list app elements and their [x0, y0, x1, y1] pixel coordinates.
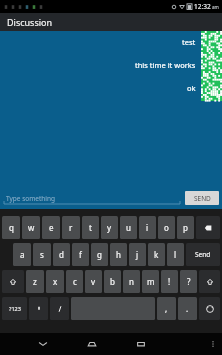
staticText: SEND [194, 194, 211, 203]
staticText: z [33, 276, 37, 287]
button[interactable]: Emoji [199, 297, 220, 320]
button[interactable]: z [26, 270, 44, 293]
button[interactable]: Backspace [196, 216, 220, 239]
staticText: 12:32 [194, 2, 211, 11]
button[interactable]: Type something [4, 191, 180, 205]
button[interactable]: x [46, 270, 64, 293]
button[interactable]: d [53, 243, 70, 266]
button[interactable]: a [13, 243, 31, 266]
button[interactable]: b [104, 270, 121, 293]
staticText: n [129, 276, 134, 287]
button[interactable]: j [129, 243, 146, 266]
button[interactable]: ?123 [2, 297, 27, 320]
button[interactable]: m [142, 270, 159, 293]
staticText: c [73, 276, 77, 287]
staticText: d [59, 249, 64, 260]
staticText: . [186, 303, 189, 314]
button[interactable]: v [85, 270, 102, 293]
staticText: this time it works [135, 60, 196, 70]
staticText: Type something [6, 194, 55, 203]
button[interactable]: e [42, 216, 60, 239]
staticText: q [9, 222, 14, 233]
staticText: f [79, 249, 82, 260]
staticText: s [40, 249, 44, 260]
staticText: , [165, 303, 168, 314]
button[interactable]: i [139, 216, 156, 239]
button[interactable]: Back [35, 336, 51, 352]
staticText: t [89, 222, 92, 233]
button[interactable]: ! [161, 270, 178, 293]
button[interactable]: q [2, 216, 20, 239]
staticText: l [174, 249, 177, 260]
button[interactable]: More options [207, 338, 219, 350]
staticText: i [146, 222, 149, 233]
button[interactable]: Recents [133, 336, 149, 352]
staticText: w [28, 222, 35, 233]
button[interactable]: n [123, 270, 140, 293]
button[interactable]: w [22, 216, 40, 239]
button[interactable]: r [62, 216, 80, 239]
staticText: h [116, 249, 121, 260]
staticText: am [212, 4, 219, 10]
button[interactable]: Settings [50, 297, 69, 320]
button[interactable]: c [66, 270, 83, 293]
button[interactable]: SEND [185, 191, 219, 205]
button[interactable]: p [177, 216, 194, 239]
button[interactable]: Send [186, 243, 220, 266]
button[interactable]: Home [84, 336, 100, 352]
staticText: k [154, 249, 159, 260]
staticText: ok [187, 83, 196, 93]
staticText: a [20, 249, 25, 260]
staticText: e [49, 222, 54, 233]
staticText: ? [187, 276, 191, 287]
button[interactable]: Voice input [29, 297, 48, 320]
button[interactable]: f [72, 243, 89, 266]
staticText: o [164, 222, 169, 233]
button[interactable]: g [91, 243, 108, 266]
button[interactable]: u [120, 216, 137, 239]
staticText: j [136, 249, 139, 260]
button[interactable]: . [178, 297, 197, 320]
button[interactable]: h [110, 243, 127, 266]
staticText: x [53, 276, 58, 287]
staticText: p [183, 222, 188, 233]
staticText: ?123 [9, 305, 21, 312]
staticText: m [147, 276, 155, 287]
staticText: Discussion [7, 16, 53, 28]
staticText: y [107, 222, 112, 233]
button[interactable]: Shift [2, 270, 24, 293]
staticText: r [69, 222, 73, 233]
staticText: Send [195, 250, 211, 259]
staticText: ! [168, 276, 171, 287]
button[interactable]: t [82, 216, 99, 239]
button[interactable]: Shift [199, 270, 220, 293]
staticText: test [182, 37, 196, 47]
button[interactable]: s [33, 243, 51, 266]
staticText: g [97, 249, 102, 260]
button[interactable]: ? [180, 270, 197, 293]
button[interactable]: l [167, 243, 184, 266]
staticText: v [91, 276, 96, 287]
button[interactable]: k [148, 243, 165, 266]
button[interactable]: , [157, 297, 176, 320]
button[interactable]: y [101, 216, 118, 239]
staticText: b [110, 276, 115, 287]
staticText: u [126, 222, 131, 233]
button[interactable]: o [158, 216, 175, 239]
